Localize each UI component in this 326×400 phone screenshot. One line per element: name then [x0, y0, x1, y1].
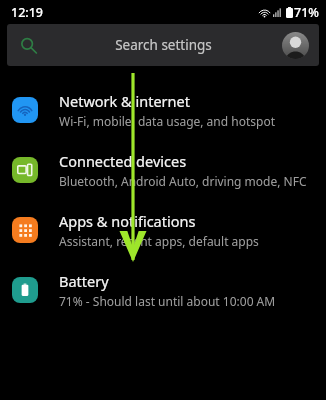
staticText: 71%	[294, 4, 319, 21]
staticText: 71% - Should last until about 10:00 AM	[59, 293, 276, 309]
staticText: Wi-Fi, mobile, data usage, and hotspot	[59, 113, 275, 129]
staticText: Connected devices	[59, 151, 187, 171]
button[interactable]: Connected devices	[0, 140, 326, 200]
button[interactable]: Apps & notifications	[0, 200, 326, 260]
button[interactable]: Search	[7, 24, 319, 66]
staticText: 12:19	[11, 4, 44, 21]
staticText: Search settings	[115, 36, 212, 54]
staticText: Bluetooth, Android Auto, driving mode, N…	[59, 173, 307, 189]
button[interactable]: Battery	[0, 260, 326, 320]
button[interactable]: Account	[282, 32, 309, 59]
staticText: Network & internet	[59, 91, 190, 111]
button[interactable]: Network & internet	[0, 80, 326, 140]
staticText: Assistant, recent apps, default apps	[59, 233, 259, 249]
other: Search	[20, 37, 37, 54]
staticText: Battery	[59, 271, 109, 291]
staticText: Apps & notifications	[59, 211, 196, 231]
